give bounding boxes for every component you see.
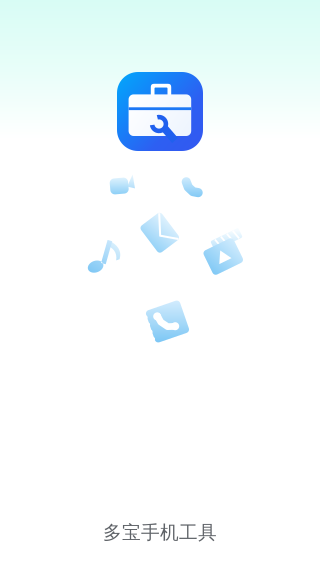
staticText: 多宝手机工具: [103, 521, 217, 544]
